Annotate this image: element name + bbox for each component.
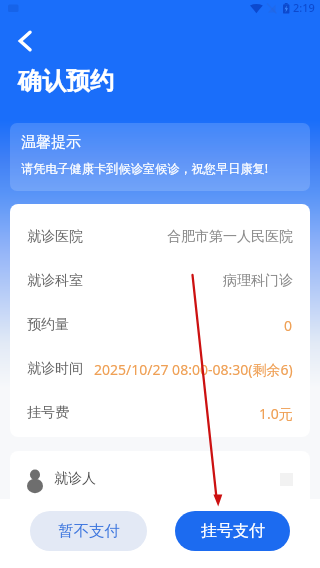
staticText: 1.0元 (259, 404, 293, 423)
staticText: 0 (284, 316, 293, 335)
staticText: 就诊人 (54, 470, 96, 488)
button[interactable]: 暂不支付 (30, 511, 147, 551)
staticText: 就诊医院 (27, 228, 83, 246)
staticText: 温馨提示 (21, 133, 81, 152)
staticText: 确认预约 (18, 66, 114, 96)
button[interactable]: 就诊人 (10, 451, 310, 507)
staticText: 合肥市第一人民医院 (167, 228, 293, 246)
staticText: 就诊时间 (27, 360, 83, 378)
button[interactable]: 挂号支付 (175, 511, 290, 551)
staticText: 2:19 (293, 0, 315, 14)
staticText: 暂不支付 (58, 521, 120, 541)
staticText: 挂号支付 (201, 521, 265, 541)
staticText: 预约量 (27, 316, 69, 334)
staticText: 2025/10/27 08:00-08:30(剩余6) (94, 360, 293, 379)
staticText: 病理科门诊 (223, 272, 293, 290)
staticText: 挂号费 (27, 404, 69, 422)
button[interactable]: Back (12, 28, 38, 54)
staticText: 就诊科室 (27, 272, 83, 290)
staticText: 请凭电子健康卡到候诊室候诊，祝您早日康复! (21, 160, 269, 177)
